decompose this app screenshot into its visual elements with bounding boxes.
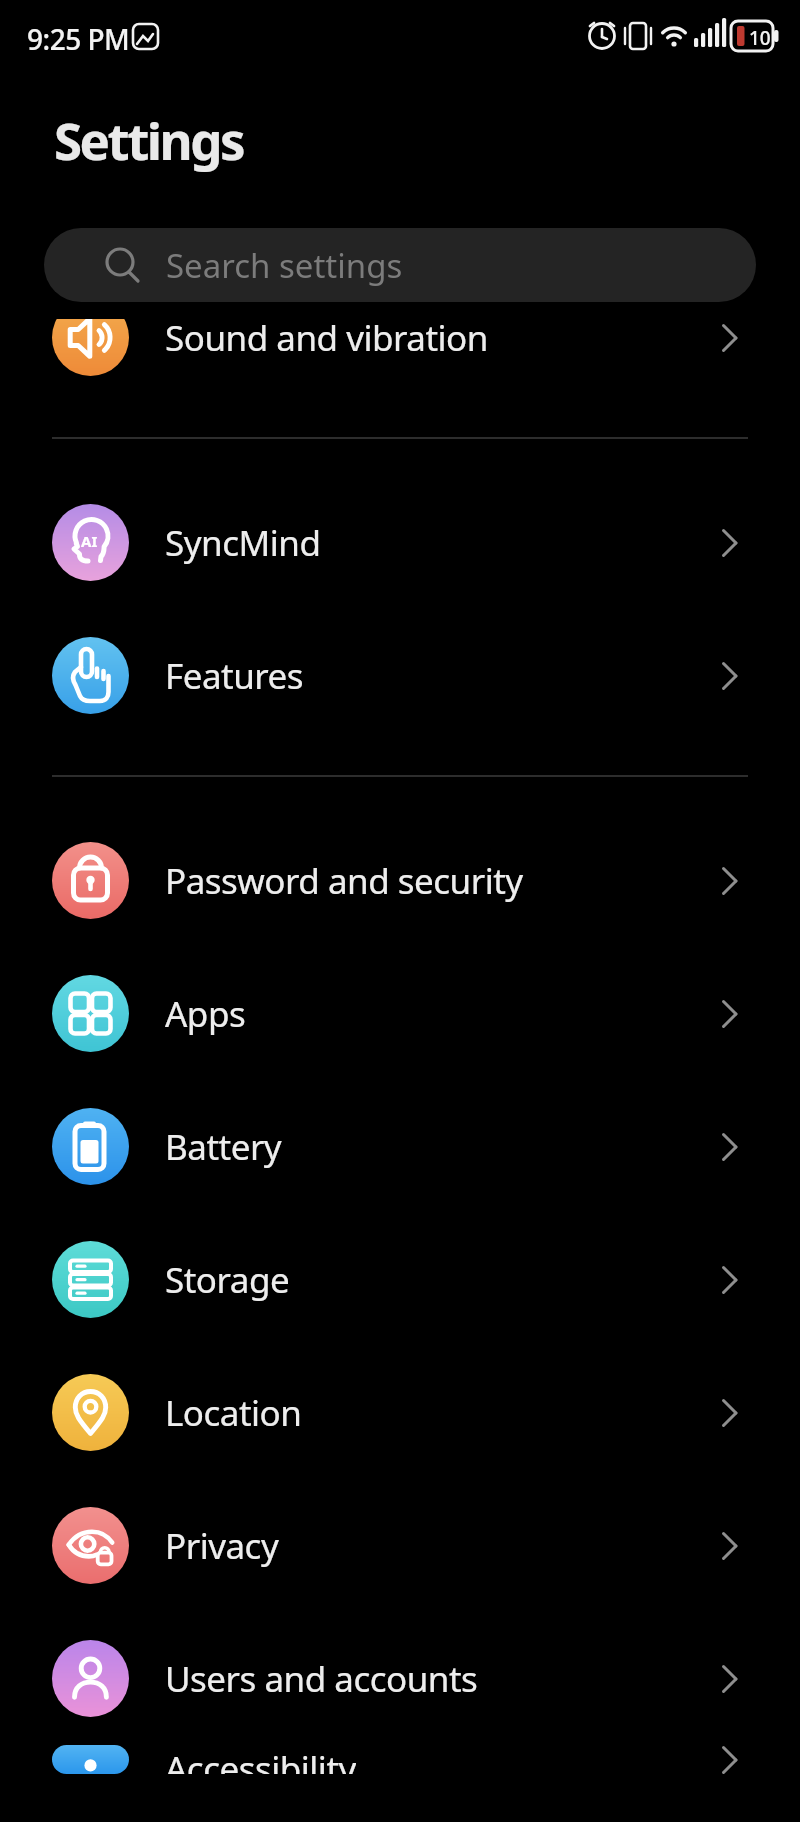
button[interactable]: Battery (0, 1080, 800, 1213)
button[interactable]: Password and security (0, 814, 800, 947)
button[interactable]: Features (0, 609, 800, 742)
staticText: AI (81, 531, 98, 551)
button[interactable]: Search settings (44, 228, 756, 302)
staticText: Users and accounts (165, 1655, 478, 1703)
staticText: Storage (165, 1256, 290, 1304)
staticText: Location (165, 1389, 302, 1437)
button[interactable]: Storage (0, 1213, 800, 1346)
staticText: Features (165, 652, 304, 700)
staticText: 10 (749, 25, 771, 51)
staticText: Accessibility (165, 1745, 356, 1774)
button[interactable]: Privacy (0, 1479, 800, 1612)
staticText: Search settings (166, 243, 403, 288)
button[interactable]: Users and accounts (0, 1612, 800, 1745)
staticText: Privacy (165, 1522, 279, 1570)
staticText: Sound and vibration (165, 319, 488, 362)
button[interactable]: Accessibility (0, 1745, 800, 1774)
button[interactable]: AI (0, 476, 800, 609)
staticText: Settings (54, 105, 244, 174)
staticText: Battery (165, 1123, 282, 1171)
button[interactable]: Location (0, 1346, 800, 1479)
staticText: Password and security (165, 857, 523, 905)
staticText: 9:25 PM (27, 20, 130, 58)
button[interactable]: Apps (0, 947, 800, 1080)
staticText: SyncMind (165, 519, 321, 567)
button[interactable]: Sound and vibration (0, 319, 800, 404)
staticText: Apps (165, 990, 246, 1038)
